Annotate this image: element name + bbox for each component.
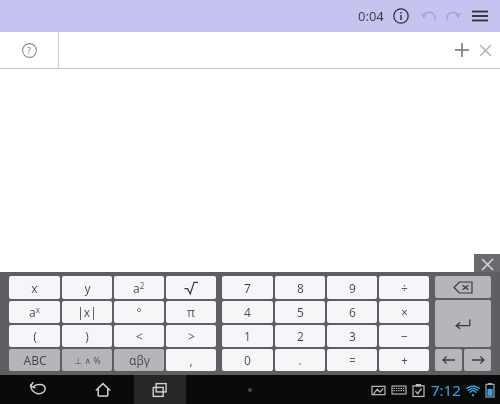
staticText: x [31,280,38,296]
staticText: 8 [297,280,304,296]
button[interactable]: Menu [468,4,492,28]
button[interactable]: Close [474,39,496,61]
button[interactable]: − [379,325,429,347]
staticText: 0:04 [358,7,384,25]
button[interactable]: 4 [222,301,273,323]
button[interactable]: Help [0,32,58,68]
button[interactable]: αβγ [114,349,164,371]
button[interactable]: y [62,276,112,299]
staticText: 2 [297,328,304,344]
button[interactable]: 6 [327,301,377,323]
staticText: + [401,352,408,368]
button[interactable]: 0 [222,349,273,371]
button[interactable]: Add [450,38,474,62]
button[interactable]: 7 [222,276,273,299]
button[interactable]: + [379,349,429,371]
button[interactable]: 3 [327,325,377,347]
button[interactable]: ( [9,325,60,347]
button[interactable]: Back [14,375,60,404]
button[interactable]: ÷ [379,276,429,299]
button[interactable]: 2 [275,325,325,347]
button[interactable]: 9 [327,276,377,299]
staticText: = [349,352,356,368]
staticText: |x| [77,304,97,320]
staticText: αβγ [129,352,150,368]
staticText: 6 [349,304,356,320]
staticText: ABC [23,352,47,368]
staticText: a2 [133,280,145,296]
button[interactable]: Hide keyboard [474,254,500,274]
staticText: , [189,352,193,368]
button[interactable]: 5 [275,301,325,323]
staticText: 7:12 [431,380,461,400]
button[interactable]: Home [80,375,126,404]
button[interactable]: < [114,325,164,347]
button[interactable]: ABC [9,349,60,371]
button[interactable]: |x| [62,301,112,323]
button[interactable]: ax [9,301,60,323]
button[interactable]: ) [62,325,112,347]
staticText: 7 [244,280,251,296]
staticText: > [188,328,195,344]
button[interactable]: > [166,325,216,347]
button[interactable]: Info [390,5,412,27]
button[interactable]: Move right [464,349,491,371]
button[interactable]: Move left [435,349,462,371]
staticText: ) [85,328,89,344]
staticText: 4 [244,304,251,320]
button[interactable]: ⊥ ∧ % [62,349,112,371]
button[interactable]: = [327,349,377,371]
button[interactable]: Undo [418,5,440,27]
staticText: ° [136,304,142,320]
button[interactable]: ° [114,301,164,323]
staticText: 9 [349,280,356,296]
button[interactable]: a2 [114,276,164,299]
button[interactable]: x [9,276,60,299]
staticText: π [187,304,195,320]
staticText: × [401,304,408,320]
button[interactable]: Recent apps [134,375,186,404]
button[interactable]: Backspace [435,276,491,298]
button[interactable]: , [166,349,216,371]
staticText: ( [33,328,37,344]
staticText: 3 [349,328,356,344]
staticText: . [298,352,302,368]
button[interactable]: 8 [275,276,325,299]
staticText: 0 [244,352,251,368]
staticText: ⊥ ∧ % [74,354,101,366]
button[interactable] [166,276,216,299]
staticText: ax [29,304,40,320]
button[interactable]: Redo [442,5,464,27]
staticText: 1 [244,328,251,344]
button[interactable]: π [166,301,216,323]
staticText: ? [27,44,31,56]
staticText: < [136,328,143,344]
button[interactable]: Enter [435,300,491,347]
button[interactable]: × [379,301,429,323]
button[interactable]: 1 [222,325,273,347]
staticText: y [84,280,91,296]
staticText: ÷ [401,280,408,296]
button[interactable]: . [275,349,325,371]
staticText: − [401,328,408,344]
staticText: 5 [297,304,304,320]
